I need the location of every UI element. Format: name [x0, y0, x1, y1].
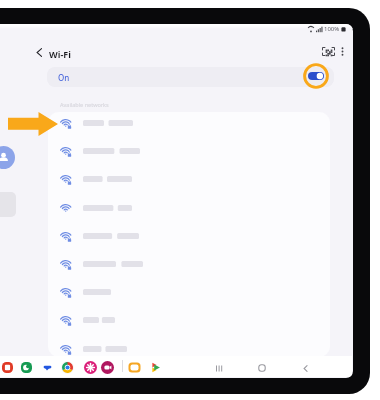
- button[interactable]: Wi-Fi on: [301, 61, 331, 91]
- button[interactable]: Phone: [20, 361, 33, 374]
- button[interactable]: [48, 194, 330, 222]
- button[interactable]: More options: [334, 43, 351, 60]
- button[interactable]: [48, 250, 330, 278]
- button[interactable]: Back: [295, 358, 315, 378]
- button[interactable]: Play Store: [149, 361, 162, 374]
- button[interactable]: [48, 137, 330, 165]
- staticText: Wi-Fi: [49, 48, 71, 60]
- button[interactable]: [48, 165, 330, 193]
- button[interactable]: [48, 112, 330, 137]
- staticText: Available networks: [60, 101, 109, 108]
- button[interactable]: Recents: [209, 358, 229, 378]
- button[interactable]: On: [47, 67, 334, 87]
- button[interactable]: Home: [252, 358, 272, 378]
- button[interactable]: [48, 278, 330, 306]
- button[interactable]: [48, 222, 330, 250]
- button[interactable]: [48, 306, 330, 334]
- button[interactable]: Folder: [128, 361, 141, 374]
- button[interactable]: Messages: [41, 361, 54, 374]
- button[interactable]: Chrome: [61, 361, 74, 374]
- button[interactable]: Gallery: [84, 361, 97, 374]
- button[interactable]: Scan QR code: [320, 43, 337, 60]
- staticText: 100%: [324, 25, 340, 33]
- button[interactable]: Account: [0, 146, 15, 169]
- button[interactable]: Back: [30, 44, 47, 61]
- button[interactable]: [48, 335, 330, 357]
- button[interactable]: Camera: [101, 361, 114, 374]
- button[interactable]: Files: [1, 361, 14, 374]
- staticText: On: [58, 72, 70, 83]
